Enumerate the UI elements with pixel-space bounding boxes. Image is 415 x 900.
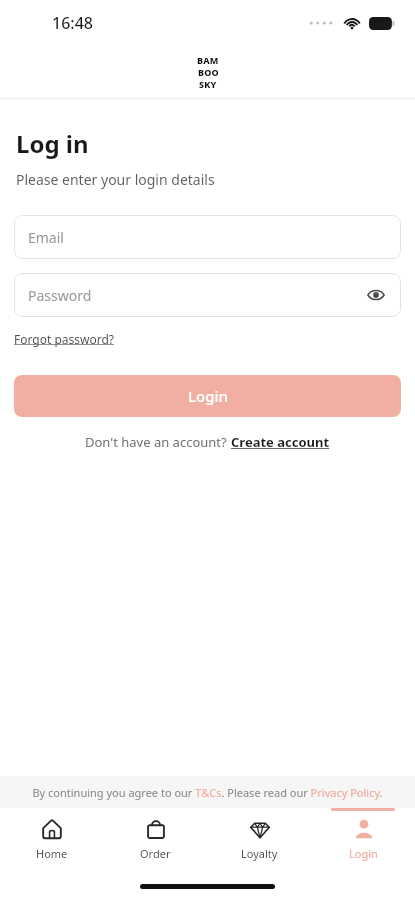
staticText: BAM (197, 54, 219, 66)
staticText: Order (140, 846, 171, 861)
staticText: Create account (231, 433, 330, 451)
button[interactable]: Login (14, 375, 401, 417)
staticText: Forgot password? (14, 331, 115, 347)
staticText: 16:48 (52, 12, 93, 34)
staticText: Loyalty (241, 846, 278, 861)
button[interactable]: Don't have an account? (85, 433, 330, 451)
staticText: BOO (198, 66, 219, 78)
staticText: SKY (199, 78, 217, 90)
staticText: Don't have an account? (85, 433, 231, 451)
button[interactable]: Email (14, 215, 401, 259)
staticText: Login (349, 846, 378, 861)
staticText: By continuing you agree to our T&Cs. Ple… (32, 785, 383, 800)
button[interactable]: Home (0, 808, 103, 872)
staticText: Email (28, 228, 64, 247)
button[interactable]: Order (103, 808, 207, 872)
staticText: Home (36, 846, 68, 861)
staticText: Log in (16, 127, 89, 160)
staticText: Password (28, 286, 92, 305)
button[interactable]: Forgot password? (14, 331, 115, 347)
button[interactable]: Show password (361, 280, 391, 310)
staticText: Login (188, 386, 228, 406)
button[interactable]: Loyalty (207, 808, 311, 872)
button[interactable]: Password (14, 273, 401, 317)
staticText: Please enter your login details (16, 170, 215, 189)
button[interactable]: Login (311, 808, 415, 872)
